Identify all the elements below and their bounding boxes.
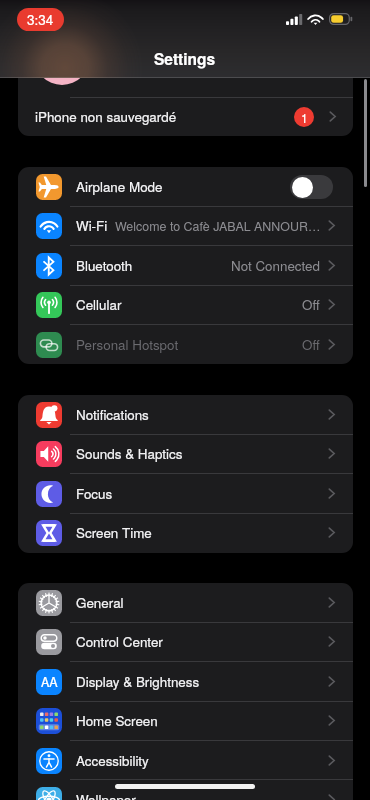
staticText: Bluetooth — [76, 256, 133, 275]
button[interactable]: Wi-Fi — [18, 206, 353, 245]
button[interactable]: Sounds & Haptics — [18, 434, 353, 473]
button[interactable]: Screen Time — [18, 513, 353, 552]
staticText: Wallpaper — [76, 790, 136, 800]
button[interactable]: Notifications — [18, 395, 353, 434]
button[interactable]: Accessibility — [18, 741, 353, 780]
button[interactable]: Home Screen — [18, 701, 353, 740]
staticText: Display & Brightness — [76, 672, 200, 691]
staticText: Screen Time — [76, 523, 152, 542]
staticText: Home Screen — [76, 711, 158, 730]
button[interactable]: Focus — [18, 474, 353, 513]
staticText: Off — [302, 295, 320, 314]
button[interactable]: Cellular — [18, 285, 353, 324]
staticText: Sounds & Haptics — [76, 444, 183, 463]
staticText: 3:34 — [27, 10, 54, 29]
staticText: Notifications — [76, 405, 149, 424]
button[interactable]: General — [18, 583, 353, 622]
staticText: Cellular — [76, 295, 122, 314]
staticText: General — [76, 593, 124, 612]
button[interactable]: Airplane Mode — [18, 167, 353, 206]
staticText: Off — [302, 335, 320, 354]
staticText: Accessibility — [76, 751, 149, 770]
button[interactable]: AA — [18, 662, 353, 701]
button[interactable]: Airplane Mode toggle — [290, 175, 333, 199]
staticText: Settings — [154, 48, 216, 70]
button[interactable]: Bluetooth — [18, 246, 353, 285]
button[interactable]: iPhone non sauvegardé — [18, 97, 353, 136]
staticText: iPhone non sauvegardé — [35, 107, 177, 126]
button[interactable]: Personal Hotspot — [18, 325, 353, 364]
button[interactable]: Control Center — [18, 622, 353, 661]
staticText: Not Connected — [231, 256, 320, 275]
staticText: Control Center — [76, 632, 163, 651]
button[interactable]: Wallpaper — [18, 780, 353, 800]
staticText: Focus — [76, 484, 113, 503]
staticText: Airplane Mode — [76, 177, 163, 196]
staticText: Personal Hotspot — [76, 335, 179, 354]
staticText: Welcome to Cafè JABAL ANNOUR… — [115, 217, 325, 235]
staticText: AA — [41, 673, 58, 691]
staticText: 1 — [301, 109, 308, 126]
staticText: Wi-Fi — [76, 216, 108, 235]
